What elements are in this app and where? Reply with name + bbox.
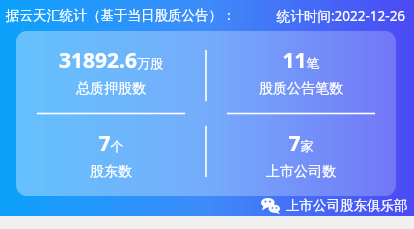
other: WeChat official account [261, 197, 280, 213]
button[interactable]: WeChat official account [261, 195, 408, 215]
staticText: 股质公告笔数 [259, 80, 343, 98]
staticText: 7个 [98, 129, 124, 158]
staticText: 统计时间:2022-12-26 [277, 7, 406, 25]
staticText: 据云天汇统计（基于当日股质公告）： [6, 7, 236, 24]
staticText: 总质押股数 [76, 80, 146, 98]
staticText: 上市公司数 [266, 163, 336, 181]
button[interactable]: 7个 [16, 113, 206, 196]
staticText: 上市公司股东俱乐部 [286, 197, 408, 214]
staticText: 7家 [288, 129, 314, 158]
button[interactable]: 11笔 [206, 31, 396, 113]
staticText: 31892.6万股 [59, 46, 163, 75]
staticText: 11笔 [282, 46, 320, 75]
staticText: 股东数 [90, 163, 132, 181]
button[interactable]: 31892.6万股 [16, 31, 206, 113]
button[interactable]: 7家 [206, 113, 396, 196]
